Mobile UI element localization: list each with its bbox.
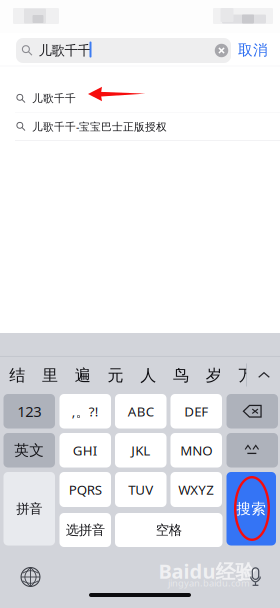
staticText: 鸟 bbox=[173, 366, 189, 385]
staticText: 岁 bbox=[206, 366, 222, 385]
staticText: 搜索 bbox=[236, 500, 266, 518]
staticText: 选拼音 bbox=[66, 522, 105, 538]
button[interactable]: 选拼音 bbox=[59, 513, 111, 547]
button[interactable]: 空格 bbox=[115, 513, 222, 547]
staticText: 结 bbox=[9, 366, 25, 385]
button[interactable]: DEF bbox=[170, 394, 222, 428]
button[interactable]: 结 bbox=[1, 359, 33, 392]
staticText: 拼音 bbox=[16, 501, 42, 517]
button[interactable]: 取消 bbox=[236, 37, 270, 62]
button[interactable]: TUV bbox=[115, 472, 166, 507]
staticText: PQRS bbox=[69, 481, 102, 498]
staticText: ABC bbox=[128, 402, 154, 420]
staticText: 万 bbox=[239, 366, 255, 385]
staticText: 儿歌千千 bbox=[38, 42, 90, 59]
button[interactable]: 人 bbox=[132, 359, 164, 392]
button[interactable]: 万 bbox=[231, 359, 263, 392]
button[interactable]: Switch keyboard bbox=[20, 567, 40, 587]
staticText: TUV bbox=[128, 481, 153, 498]
button[interactable]: ABC bbox=[115, 394, 166, 428]
staticText: 取消 bbox=[238, 41, 268, 59]
button[interactable]: 拼音 bbox=[3, 472, 55, 545]
staticText: jingyan.baidu.com bbox=[168, 577, 250, 589]
button[interactable]: 搜索 bbox=[226, 472, 276, 545]
staticText: 人 bbox=[140, 366, 156, 385]
staticText: 123 bbox=[17, 401, 41, 421]
button[interactable]: 遍 bbox=[67, 359, 99, 392]
staticText: 元 bbox=[107, 366, 123, 385]
button[interactable]: 英文 bbox=[3, 433, 55, 467]
button[interactable]: PQRS bbox=[59, 472, 111, 507]
staticText: WXYZ bbox=[178, 481, 214, 498]
button[interactable]: 儿歌千千 bbox=[16, 38, 231, 63]
button[interactable]: 儿歌千千-宝宝巴士正版授权 bbox=[0, 112, 280, 140]
button[interactable]: 岁 bbox=[198, 359, 230, 392]
staticText: 遍 bbox=[75, 366, 91, 385]
staticText: 英文 bbox=[14, 441, 44, 459]
staticText: MNO bbox=[180, 441, 212, 459]
staticText: 儿歌千千-宝宝巴士正版授权 bbox=[32, 119, 167, 134]
button[interactable]: Emoticons bbox=[226, 433, 278, 467]
button[interactable]: MNO bbox=[170, 433, 222, 467]
button[interactable]: ,。?! bbox=[59, 394, 111, 428]
button[interactable]: 里 bbox=[34, 359, 66, 392]
staticText: ,。?! bbox=[72, 402, 99, 420]
button[interactable]: 元 bbox=[99, 359, 131, 392]
staticText: GHI bbox=[73, 441, 98, 459]
button[interactable]: 123 bbox=[3, 394, 55, 428]
staticText: 空格 bbox=[156, 522, 182, 538]
staticText: Baidu经验 bbox=[158, 558, 255, 584]
button[interactable]: 鸟 bbox=[165, 359, 197, 392]
staticText: 里 bbox=[42, 366, 58, 385]
button[interactable]: More candidates bbox=[249, 358, 279, 391]
button[interactable]: 儿歌千千 bbox=[0, 84, 280, 112]
button[interactable]: Delete bbox=[226, 394, 278, 428]
button[interactable]: GHI bbox=[59, 433, 111, 467]
button[interactable]: Clear text bbox=[215, 44, 228, 57]
staticText: 儿歌千千 bbox=[32, 92, 76, 105]
staticText: JKL bbox=[131, 441, 150, 459]
button[interactable]: WXYZ bbox=[170, 472, 222, 507]
button[interactable]: JKL bbox=[115, 433, 166, 467]
staticText: DEF bbox=[184, 402, 208, 420]
